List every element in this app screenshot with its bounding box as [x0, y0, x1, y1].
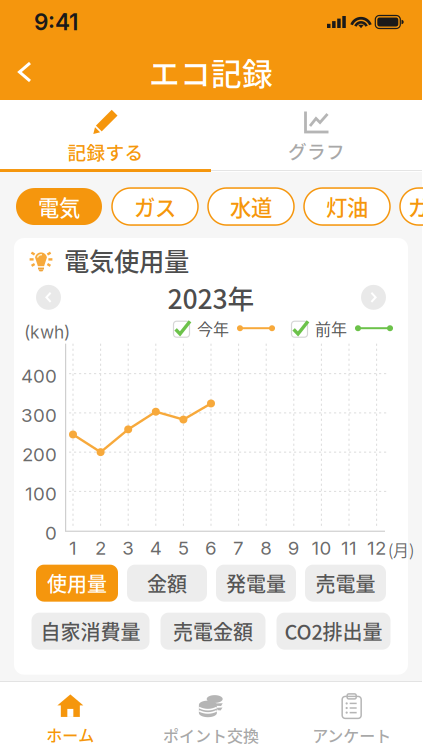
button[interactable]: アンケート — [281, 684, 422, 747]
staticText: ポイント交換 — [163, 723, 259, 747]
staticText: 前年 — [315, 317, 347, 340]
staticText: 200 — [22, 443, 57, 466]
button[interactable]: 金額 — [127, 565, 207, 602]
staticText: 8 — [260, 537, 272, 559]
button[interactable]: 売電金額 — [160, 613, 265, 650]
staticText: 5 — [178, 537, 189, 559]
staticText: 水道 — [230, 191, 272, 222]
staticText: ホーム — [46, 723, 94, 746]
staticText: 400 — [21, 365, 57, 387]
staticText: 6 — [205, 537, 217, 559]
staticText: 電気 — [38, 191, 80, 222]
staticText: (kwh) — [24, 322, 70, 343]
button[interactable]: 売電量 — [305, 565, 386, 602]
staticText: 12 — [367, 537, 386, 559]
staticText: (月) — [388, 538, 414, 561]
staticText: ガソリン — [408, 191, 423, 222]
staticText: 4 — [150, 537, 162, 559]
button[interactable]: 使用量 — [36, 565, 118, 602]
button[interactable]: 自家消費量 — [31, 613, 149, 650]
staticText: CO2排出量 — [284, 617, 382, 646]
staticText: 売電量 — [315, 569, 375, 598]
button[interactable]: Back — [0, 47, 50, 97]
button[interactable]: 電気 — [16, 188, 102, 225]
button[interactable]: CO2排出量 — [276, 613, 390, 650]
staticText: 9 — [288, 537, 300, 559]
button[interactable]: 発電量 — [216, 565, 296, 602]
staticText: エコ記録 — [149, 50, 273, 94]
staticText: 1 — [69, 537, 77, 559]
staticText: 3 — [122, 537, 134, 559]
staticText: グラフ — [288, 137, 345, 164]
button[interactable]: 水道 — [208, 188, 294, 225]
staticText: 売電金額 — [173, 617, 253, 646]
button[interactable]: ガソリン — [400, 188, 423, 225]
button[interactable]: Previous year — [36, 285, 61, 310]
button[interactable]: ポイント交換 — [141, 684, 281, 747]
staticText: 今年 — [197, 317, 229, 340]
staticText: 発電量 — [226, 569, 286, 598]
staticText: 電気使用量 — [64, 242, 189, 278]
staticText: 記録する — [67, 138, 143, 165]
staticText: 2 — [95, 537, 106, 559]
staticText: 2023年 — [167, 278, 254, 317]
staticText: 300 — [21, 404, 57, 426]
button[interactable]: ホーム — [0, 685, 141, 746]
button[interactable]: ガス — [112, 188, 198, 225]
staticText: 10 — [311, 537, 331, 559]
button[interactable]: Next year — [361, 285, 386, 310]
staticText: 灯油 — [326, 191, 368, 222]
staticText: 9:41 — [34, 8, 78, 36]
staticText: 金額 — [147, 569, 187, 598]
staticText: 使用量 — [47, 569, 107, 598]
button[interactable]: 灯油 — [304, 188, 390, 225]
staticText: 0 — [45, 522, 57, 544]
button[interactable]: グラフ — [211, 101, 422, 171]
staticText: 100 — [25, 482, 57, 505]
staticText: アンケート — [312, 723, 391, 747]
staticText: 自家消費量 — [40, 617, 140, 646]
staticText: ガス — [134, 191, 176, 222]
button[interactable]: 記録する — [0, 100, 211, 172]
staticText: 7 — [233, 537, 244, 559]
staticText: 11 — [341, 537, 357, 559]
